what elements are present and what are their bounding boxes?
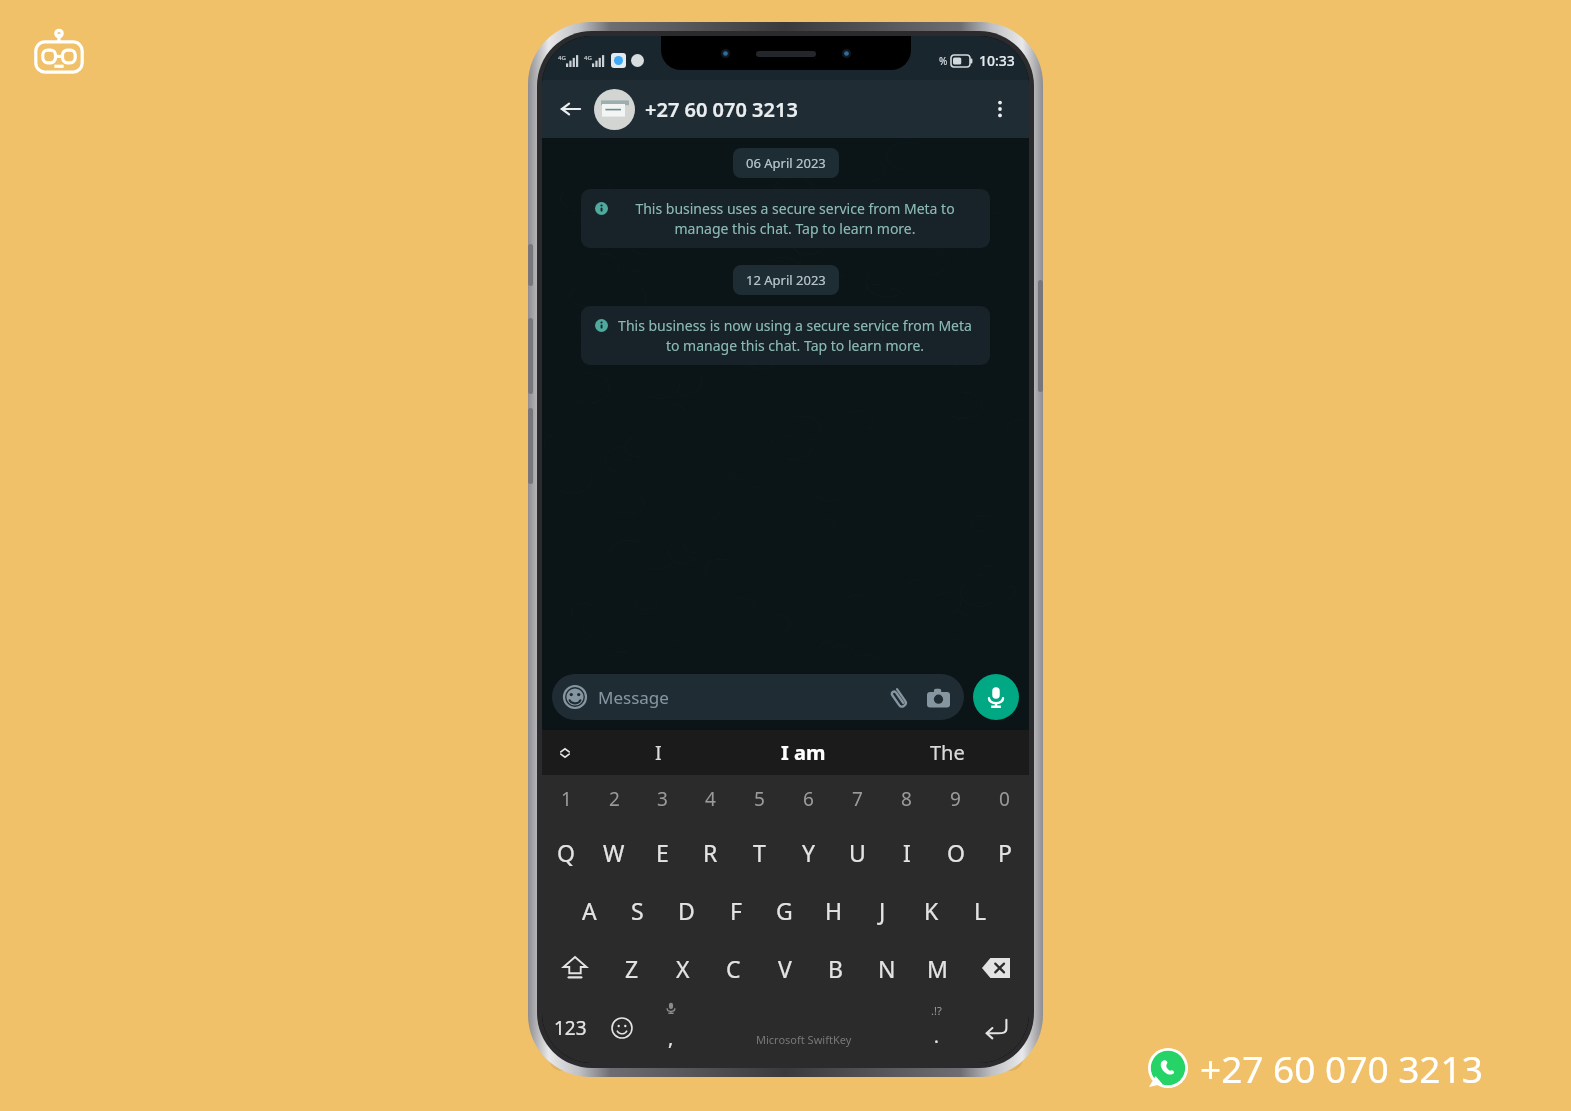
staticText: The — [930, 739, 965, 766]
button[interactable]: R — [686, 823, 735, 881]
staticText: 8 — [901, 786, 912, 812]
staticText: W — [603, 837, 625, 868]
button[interactable]: 7 — [833, 775, 882, 823]
staticText: C — [726, 953, 741, 984]
button[interactable]: T — [735, 823, 784, 881]
staticText: 6 — [803, 786, 814, 812]
staticText: I — [903, 837, 911, 868]
button[interactable]: 4 — [686, 775, 735, 823]
button[interactable]: X — [657, 939, 708, 997]
button[interactable]: I am — [731, 730, 875, 775]
button[interactable]: This business is now using a secure serv… — [581, 306, 990, 365]
button[interactable]: Enter — [962, 997, 1029, 1059]
staticText: G — [776, 895, 793, 926]
button[interactable]: V — [759, 939, 810, 997]
button[interactable]: M — [912, 939, 963, 997]
button[interactable]: K — [907, 881, 956, 939]
button[interactable]: J — [858, 881, 907, 939]
button[interactable]: +27 60 070 3213 — [645, 96, 983, 123]
button[interactable]: 12 April 2023 — [733, 265, 839, 295]
button[interactable]: G — [760, 881, 809, 939]
staticText: H — [825, 895, 843, 926]
button[interactable]: P — [980, 823, 1029, 881]
button[interactable]: D — [662, 881, 711, 939]
button[interactable]: 06 April 2023 — [733, 148, 839, 178]
button[interactable]: N — [861, 939, 912, 997]
button[interactable]: Microsoft SwiftKey — [696, 997, 911, 1059]
button[interactable]: S — [613, 881, 662, 939]
staticText: 1 — [561, 786, 572, 812]
staticText: 0 — [999, 786, 1010, 812]
staticText: 2 — [609, 786, 620, 812]
button[interactable]: 8 — [882, 775, 931, 823]
staticText: D — [678, 895, 695, 926]
button[interactable]: Attach — [884, 682, 914, 712]
staticText: .!? — [931, 1003, 942, 1018]
button[interactable]: 6 — [784, 775, 833, 823]
button[interactable]: 123 — [542, 997, 599, 1059]
button[interactable]: A — [565, 881, 613, 939]
button[interactable]: W — [590, 823, 638, 881]
staticText: Y — [802, 837, 816, 868]
staticText: , — [668, 1024, 674, 1051]
button[interactable]: Back — [554, 92, 588, 126]
button[interactable]: Message — [552, 674, 964, 720]
staticText: 06 April 2023 — [746, 154, 826, 172]
staticText: 7 — [852, 786, 863, 812]
staticText: A — [582, 895, 597, 926]
button[interactable]: Contact photo — [594, 89, 635, 130]
button[interactable]: Camera — [923, 682, 953, 712]
staticText: Microsoft SwiftKey — [756, 1032, 852, 1047]
staticText: I — [655, 739, 662, 766]
staticText: 4G — [584, 54, 592, 62]
staticText: E — [656, 837, 669, 868]
staticText: T — [753, 837, 766, 868]
button[interactable]: More options — [983, 92, 1017, 126]
staticText: V — [778, 953, 792, 984]
button[interactable]: E — [638, 823, 686, 881]
button[interactable]: I — [882, 823, 931, 881]
staticText: O — [947, 837, 965, 868]
button[interactable]: Voice message — [973, 674, 1019, 720]
staticText: 9 — [950, 786, 961, 812]
button[interactable]: Shift — [542, 939, 607, 997]
button[interactable]: B — [810, 939, 861, 997]
button[interactable]: 1 — [542, 775, 590, 823]
button[interactable]: 9 — [931, 775, 980, 823]
button[interactable]: C — [708, 939, 759, 997]
staticText: 5 — [754, 786, 765, 812]
staticText: I am — [781, 739, 826, 766]
button[interactable]: L — [956, 881, 1005, 939]
button[interactable]: Backspace — [963, 939, 1029, 997]
button[interactable]: Y — [784, 823, 833, 881]
button[interactable]: H — [809, 881, 858, 939]
button[interactable]: Bot logo — [30, 28, 88, 86]
button[interactable]: Q — [542, 823, 590, 881]
staticText: 4 — [705, 786, 716, 812]
staticText: Message — [598, 686, 884, 709]
staticText: % — [939, 54, 948, 68]
button[interactable]: U — [833, 823, 882, 881]
button[interactable]: O — [931, 823, 980, 881]
button[interactable]: The — [875, 730, 1019, 775]
button[interactable]: 5 — [735, 775, 784, 823]
button[interactable]: F — [711, 881, 760, 939]
button[interactable]: Z — [607, 939, 657, 997]
staticText: Q — [557, 837, 575, 868]
staticText: M — [927, 953, 948, 984]
staticText: N — [878, 953, 896, 984]
staticText: 10:33 — [979, 51, 1015, 70]
staticText: S — [631, 895, 644, 926]
button[interactable]: 2 — [590, 775, 638, 823]
staticText: K — [924, 895, 939, 926]
button[interactable]: Emoji — [599, 997, 645, 1059]
button[interactable]: 3 — [638, 775, 686, 823]
button[interactable]: I — [586, 730, 731, 775]
button[interactable]: , — [645, 997, 696, 1059]
staticText: J — [879, 895, 886, 926]
staticText: R — [703, 837, 718, 868]
button[interactable]: This business uses a secure service from… — [581, 189, 990, 248]
button[interactable]: 0 — [980, 775, 1029, 823]
button[interactable]: .!? — [911, 997, 962, 1059]
staticText: X — [676, 953, 690, 984]
